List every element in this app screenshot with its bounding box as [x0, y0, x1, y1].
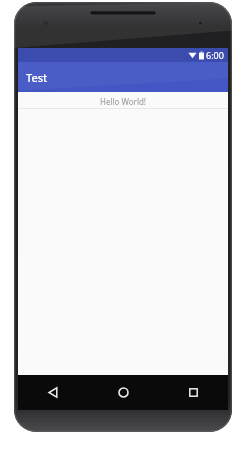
button[interactable]: Recent apps — [158, 375, 228, 410]
staticText: Test — [26, 70, 48, 85]
staticText: 6:00 — [206, 49, 224, 61]
button[interactable]: Home — [88, 375, 158, 410]
staticText: Hello World! — [18, 96, 228, 107]
button[interactable]: Back — [18, 375, 88, 410]
